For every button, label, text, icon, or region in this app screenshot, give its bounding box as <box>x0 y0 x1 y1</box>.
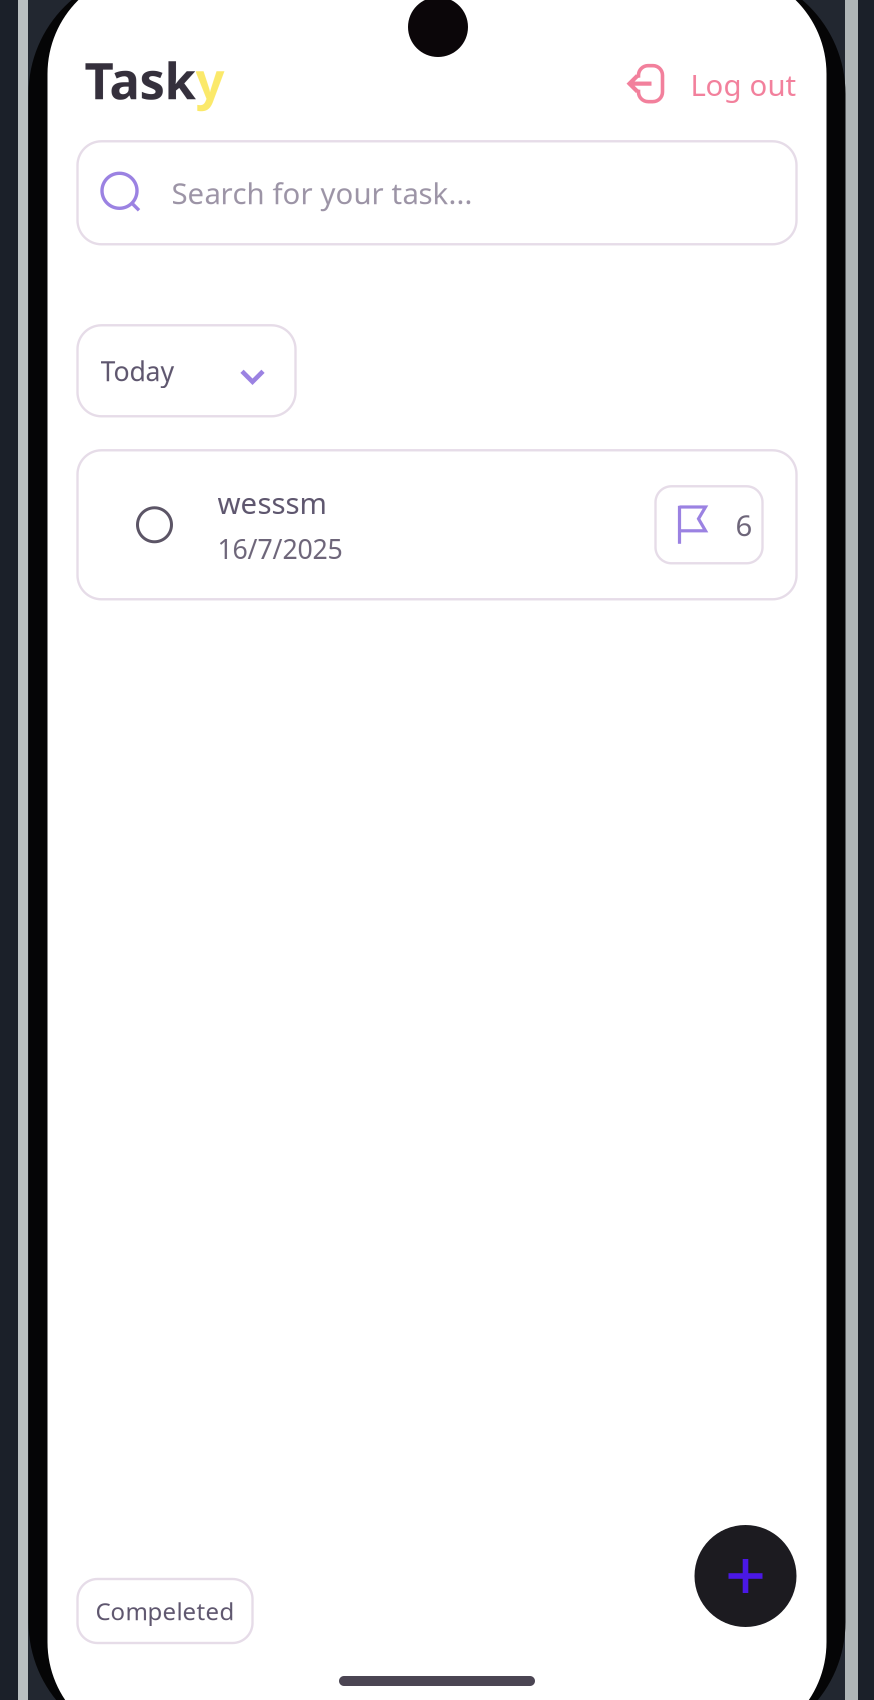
staticText: 6 <box>735 505 752 544</box>
staticText: y <box>195 46 224 113</box>
staticText: Today <box>100 353 174 388</box>
staticText: Compeleted <box>95 1595 234 1627</box>
button[interactable]: Compeleted <box>77 1579 252 1643</box>
button[interactable]: Log out <box>626 54 796 98</box>
button[interactable]: Add task <box>694 1541 796 1643</box>
staticText: Search for your task... <box>171 173 472 212</box>
staticText: Log out <box>690 65 796 104</box>
staticText: 16/7/2025 <box>217 531 342 566</box>
staticText: wesssm <box>217 483 326 522</box>
button[interactable]: Search for your task... <box>77 141 796 244</box>
button[interactable]: Today <box>77 325 295 416</box>
button[interactable]: wesssm <box>77 450 796 599</box>
staticText: Task <box>84 46 195 113</box>
